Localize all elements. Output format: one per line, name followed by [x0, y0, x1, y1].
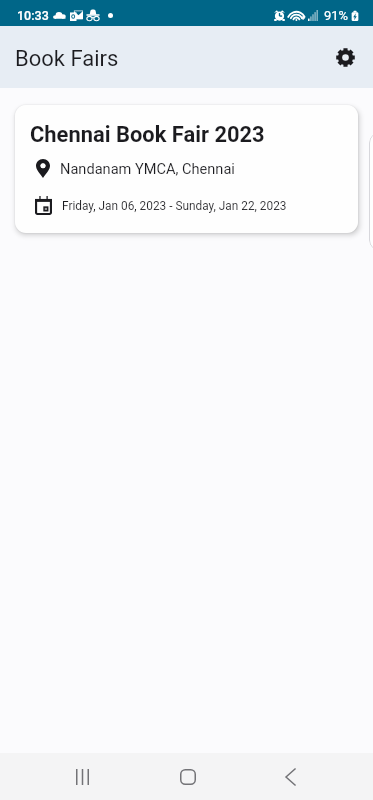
staticText: Chennai Book Fair 2023 — [30, 122, 265, 148]
staticText: 91% — [324, 8, 349, 23]
button[interactable]: Chennai Book Fair 2023 — [15, 105, 358, 233]
button[interactable]: Settings — [323, 35, 367, 79]
staticText: Friday, Jan 06, 2023 - Sunday, Jan 22, 2… — [62, 199, 287, 213]
button[interactable]: Recent apps — [59, 753, 106, 800]
staticText: 10:33 — [17, 8, 49, 23]
button[interactable]: Back — [267, 753, 314, 800]
staticText: Book Fairs — [15, 46, 119, 72]
button[interactable] — [369, 132, 373, 251]
button[interactable]: Home — [164, 753, 211, 800]
staticText: Nandanam YMCA, Chennai — [60, 160, 235, 177]
